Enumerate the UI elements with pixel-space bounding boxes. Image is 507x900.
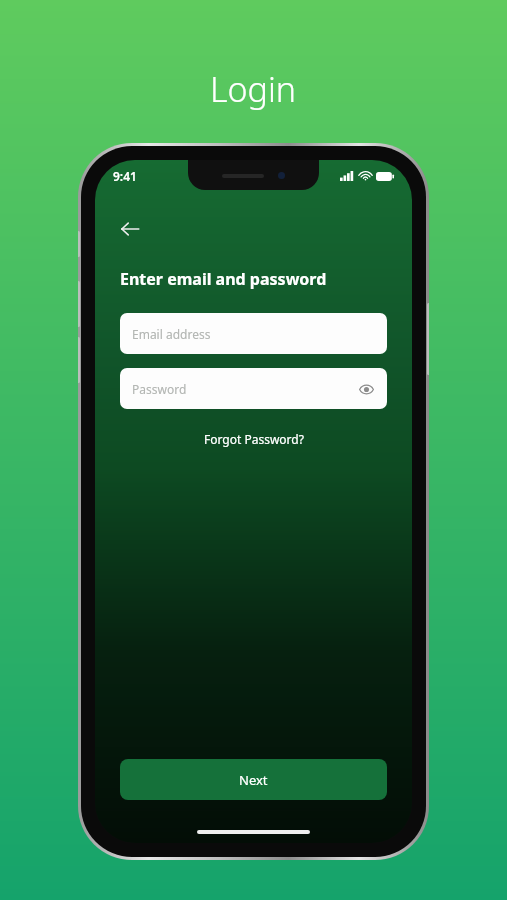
staticText: Next: [239, 771, 268, 789]
staticText: Password: [132, 381, 187, 397]
button[interactable]: Email address: [120, 313, 387, 354]
staticText: Login: [210, 66, 297, 112]
button[interactable]: Forgot Password?: [196, 427, 312, 451]
staticText: Forgot Password?: [204, 431, 304, 447]
staticText: Email address: [132, 326, 211, 342]
button[interactable]: Show password: [353, 376, 379, 402]
button[interactable]: Next: [120, 759, 387, 800]
staticText: Enter email and password: [120, 268, 327, 290]
staticText: 9:41: [113, 168, 137, 184]
button[interactable]: Password: [120, 368, 387, 409]
button[interactable]: Back: [109, 208, 151, 250]
